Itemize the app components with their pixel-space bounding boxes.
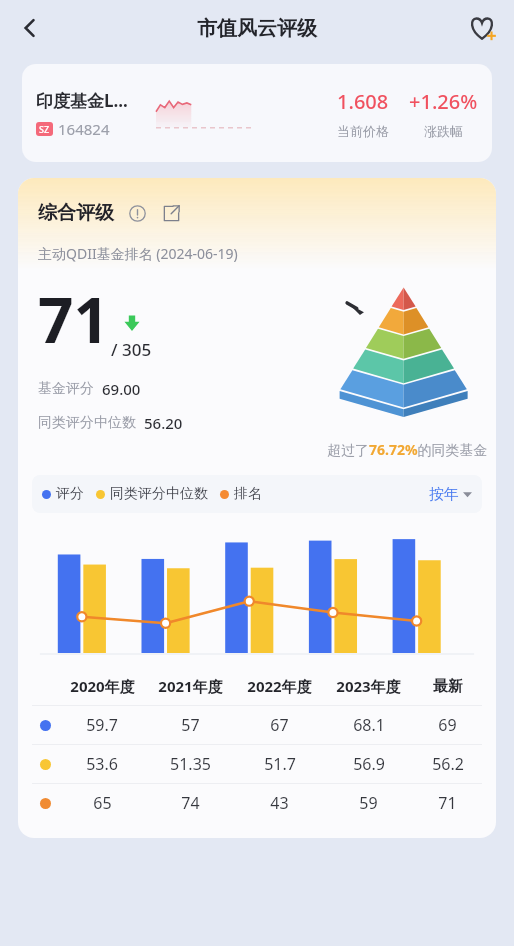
staticText: 综合评级 xyxy=(38,201,114,225)
button[interactable]: 按年 xyxy=(429,485,472,504)
staticText: 68.1 xyxy=(353,714,385,736)
staticText: / 305 xyxy=(111,338,152,361)
staticText: 2023年度 xyxy=(336,676,401,696)
button[interactable]: Add to favorites xyxy=(460,6,504,50)
staticText: 56.20 xyxy=(144,413,183,433)
staticText: 2020年度 xyxy=(70,676,135,696)
staticText: 67 xyxy=(270,714,289,736)
staticText: 59 xyxy=(359,792,378,814)
staticText: 主动QDII基金排名 (2024-06-19) xyxy=(38,244,238,263)
staticText: 56.2 xyxy=(432,753,464,775)
staticText: 涨跌幅 xyxy=(424,123,463,139)
staticText: 71 xyxy=(438,792,457,814)
staticText: 51.7 xyxy=(264,753,296,775)
staticText: 51.35 xyxy=(170,753,211,775)
staticText: 按年 xyxy=(429,485,459,504)
button[interactable]: Share xyxy=(158,200,184,226)
staticText: 69.00 xyxy=(102,379,141,399)
staticText: 74 xyxy=(181,792,200,814)
staticText: 1.608 xyxy=(337,88,389,115)
staticText: 市值风云评级 xyxy=(197,16,317,41)
staticText: SZ xyxy=(39,123,50,135)
staticText: 164824 xyxy=(58,119,110,139)
staticText: 同类评分中位数 xyxy=(110,485,208,503)
staticText: 最新 xyxy=(433,677,463,696)
staticText: 59.7 xyxy=(86,714,118,736)
staticText: 2022年度 xyxy=(247,676,312,696)
staticText: 印度基金L... xyxy=(36,89,128,112)
staticText: 评分 xyxy=(56,485,84,503)
button[interactable]: Back xyxy=(8,6,52,50)
staticText: 53.6 xyxy=(86,753,118,775)
staticText: 基金评分 xyxy=(38,380,94,398)
staticText: 超过了76.72%的同类基金 xyxy=(327,440,488,459)
staticText: 同类评分中位数 xyxy=(38,414,136,432)
button[interactable]: Info xyxy=(124,200,150,226)
staticText: 71 xyxy=(38,277,109,361)
staticText: 排名 xyxy=(234,485,262,503)
staticText: 69 xyxy=(438,714,457,736)
staticText: 56.9 xyxy=(353,753,385,775)
staticText: 2021年度 xyxy=(158,676,223,696)
staticText: 65 xyxy=(93,792,112,814)
staticText: 43 xyxy=(270,792,289,814)
staticText: 当前价格 xyxy=(337,123,389,139)
button[interactable]: 印度基金L... xyxy=(22,64,492,162)
staticText: 57 xyxy=(181,714,200,736)
staticText: +1.26% xyxy=(409,88,478,115)
